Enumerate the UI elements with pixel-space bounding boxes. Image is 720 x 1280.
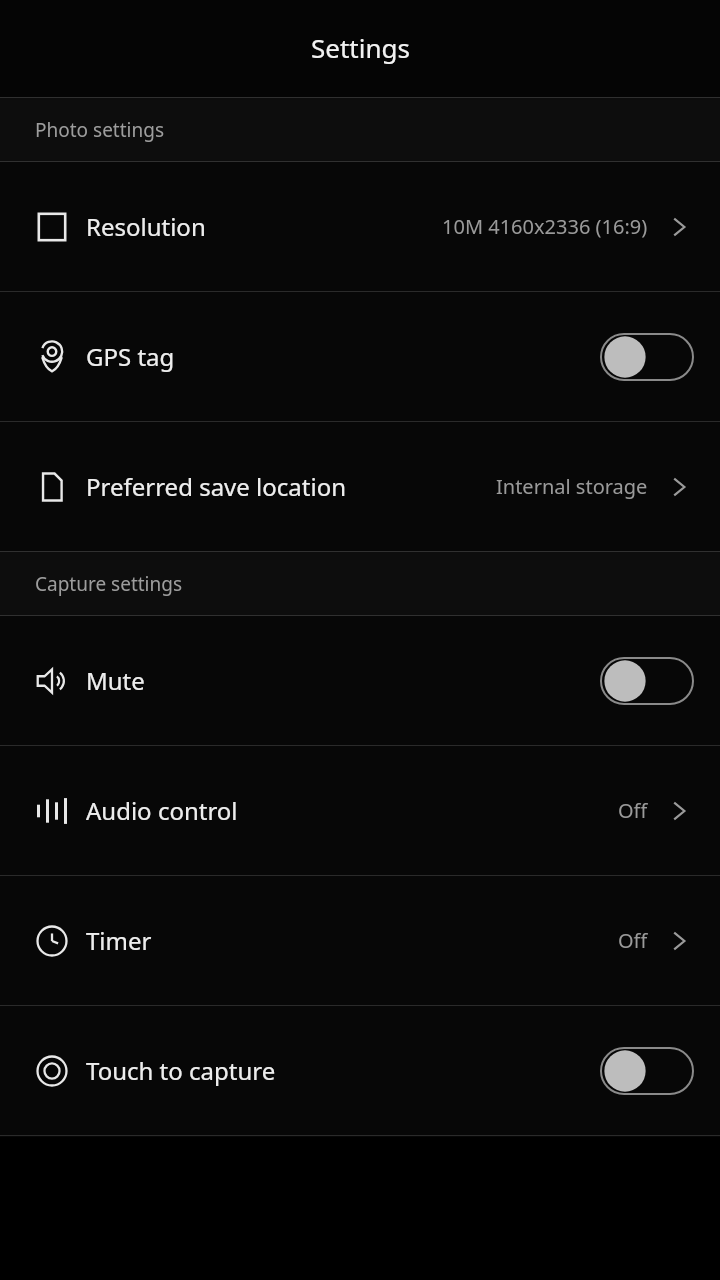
staticText: Settings <box>311 30 410 65</box>
staticText: Audio control <box>86 794 238 827</box>
staticText: Timer <box>86 924 152 957</box>
staticText: Preferred save location <box>86 470 346 503</box>
button[interactable]: Mute <box>0 616 720 745</box>
staticText: Off <box>618 797 648 824</box>
staticText: Photo settings <box>35 117 164 143</box>
button[interactable]: Toggle <box>600 1047 694 1095</box>
button[interactable]: Toggle <box>600 657 694 705</box>
button[interactable]: Timer <box>0 876 720 1005</box>
button[interactable]: Audio control <box>0 746 720 875</box>
button[interactable]: Resolution <box>0 162 720 291</box>
button[interactable]: Touch to capture <box>0 1006 720 1135</box>
staticText: 10M 4160x2336 (16:9) <box>442 213 648 240</box>
button[interactable]: Toggle <box>600 333 694 381</box>
button[interactable]: Preferred save location <box>0 422 720 551</box>
staticText: Capture settings <box>35 571 183 597</box>
staticText: Mute <box>86 664 145 697</box>
staticText: GPS tag <box>86 340 175 373</box>
staticText: Touch to capture <box>86 1054 276 1087</box>
staticText: Internal storage <box>496 473 648 500</box>
button[interactable]: GPS tag <box>0 292 720 421</box>
staticText: Resolution <box>86 210 206 243</box>
staticText: Off <box>618 927 648 954</box>
